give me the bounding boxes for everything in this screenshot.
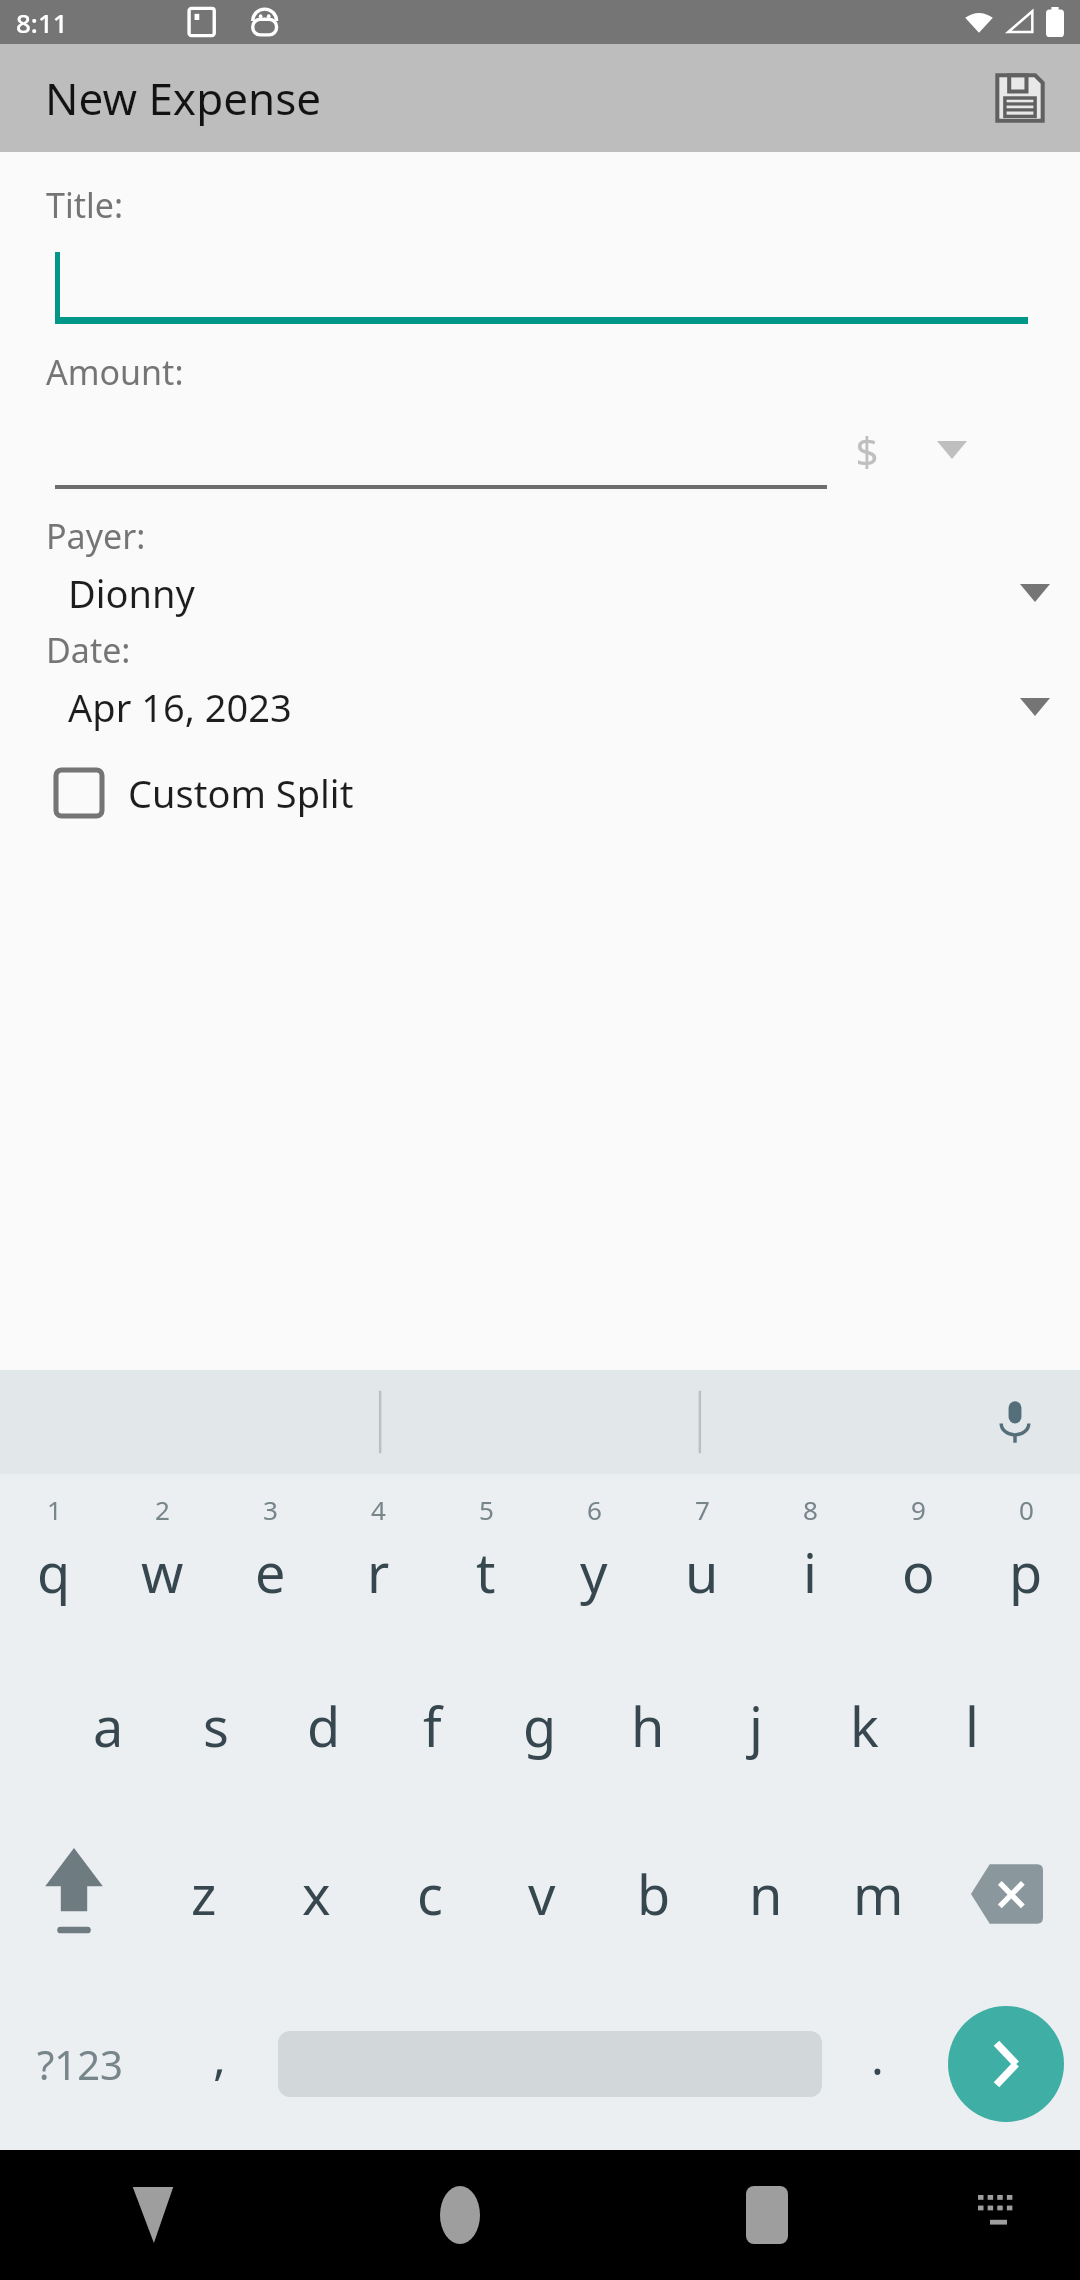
button[interactable]: 7 xyxy=(648,1474,756,1642)
staticText: e xyxy=(255,1535,286,1609)
staticText: Payer: xyxy=(46,513,146,559)
staticText: . xyxy=(871,2024,884,2089)
staticText: w xyxy=(141,1535,184,1609)
staticText: t xyxy=(476,1535,496,1609)
button[interactable]: x xyxy=(260,1810,373,1978)
button[interactable] xyxy=(55,248,1028,324)
staticText: i xyxy=(803,1535,817,1609)
button[interactable]: l xyxy=(918,1642,1026,1810)
staticText: k xyxy=(850,1689,879,1763)
button[interactable]: 9 xyxy=(864,1474,972,1642)
button[interactable]: Voice input xyxy=(978,1385,1052,1459)
staticText: j xyxy=(749,1689,763,1763)
button[interactable]: 5 xyxy=(432,1474,540,1642)
button[interactable] xyxy=(55,411,827,489)
staticText: Custom Split xyxy=(128,767,354,819)
staticText: v xyxy=(528,1857,556,1931)
staticText: a xyxy=(93,1689,124,1763)
button[interactable]: 8 xyxy=(756,1474,864,1642)
button[interactable]: 2 xyxy=(108,1474,216,1642)
button[interactable]: 0 xyxy=(972,1474,1080,1642)
button[interactable]: z xyxy=(147,1810,260,1978)
button[interactable]: n xyxy=(710,1810,822,1978)
staticText: 1 xyxy=(47,1492,62,1527)
staticText: 2 xyxy=(155,1492,170,1527)
button[interactable]: Save xyxy=(978,56,1062,140)
staticText: u xyxy=(685,1535,719,1609)
staticText: c xyxy=(417,1857,443,1931)
button[interactable]: 3 xyxy=(216,1474,324,1642)
button[interactable]: 6 xyxy=(540,1474,648,1642)
staticText: x xyxy=(302,1857,331,1931)
button[interactable]: d xyxy=(270,1642,378,1810)
staticText: r xyxy=(367,1535,390,1609)
button[interactable]: Switch keyboard xyxy=(920,2150,1080,2280)
staticText: b xyxy=(637,1857,671,1931)
staticText: 5 xyxy=(479,1492,494,1527)
button[interactable]: c xyxy=(373,1810,486,1978)
staticText: q xyxy=(37,1535,71,1609)
button[interactable]: a xyxy=(54,1642,162,1810)
staticText: g xyxy=(523,1689,557,1763)
button[interactable]: k xyxy=(810,1642,918,1810)
button[interactable]: 1 xyxy=(0,1474,108,1642)
button[interactable]: $ xyxy=(827,423,907,477)
staticText: , xyxy=(213,2024,226,2089)
button[interactable]: Currency dropdown xyxy=(907,411,997,489)
button[interactable]: s xyxy=(162,1642,270,1810)
staticText: m xyxy=(853,1857,904,1931)
staticText: f xyxy=(423,1689,442,1763)
button[interactable]: v xyxy=(486,1810,598,1978)
staticText: Apr 16, 2023 xyxy=(68,681,292,733)
button[interactable]: h xyxy=(594,1642,702,1810)
staticText: New Expense xyxy=(45,68,322,128)
staticText: 3 xyxy=(263,1492,278,1527)
staticText: o xyxy=(902,1535,935,1609)
staticText: Title: xyxy=(46,182,124,228)
button[interactable]: m xyxy=(822,1810,934,1978)
staticText: l xyxy=(965,1689,979,1763)
staticText: ?123 xyxy=(37,2037,123,2091)
staticText: 0 xyxy=(1019,1492,1034,1527)
button[interactable]: 4 xyxy=(324,1474,432,1642)
button[interactable]: . xyxy=(822,1978,932,2150)
button[interactable]: Shift xyxy=(0,1810,147,1978)
staticText: y xyxy=(580,1535,608,1609)
staticText: 9 xyxy=(911,1492,926,1527)
staticText: d xyxy=(307,1689,341,1763)
button[interactable]: Enter xyxy=(932,1978,1080,2150)
staticText: Amount: xyxy=(46,349,184,395)
button[interactable]: g xyxy=(486,1642,594,1810)
staticText: 8 xyxy=(803,1492,818,1527)
button[interactable]: , xyxy=(160,1978,278,2150)
staticText: Dionny xyxy=(68,567,195,619)
button[interactable]: Custom Split xyxy=(56,753,354,833)
button[interactable]: Dionny xyxy=(0,559,1080,627)
staticText: s xyxy=(203,1689,229,1763)
button[interactable]: Apr 16, 2023 xyxy=(0,673,1080,741)
staticText: p xyxy=(1009,1535,1043,1609)
staticText: 4 xyxy=(371,1492,386,1527)
button[interactable]: j xyxy=(702,1642,810,1810)
button[interactable]: Recents xyxy=(613,2150,920,2280)
button[interactable]: Home xyxy=(306,2150,613,2280)
staticText: h xyxy=(631,1689,665,1763)
staticText: z xyxy=(191,1857,217,1931)
staticText: Date: xyxy=(46,627,131,673)
button[interactable]: Backspace xyxy=(934,1810,1080,1978)
button[interactable]: f xyxy=(378,1642,486,1810)
button[interactable]: ?123 xyxy=(0,1978,160,2150)
staticText: 8:11 xyxy=(16,5,68,40)
button[interactable]: Back xyxy=(0,2150,306,2280)
staticText: 6 xyxy=(587,1492,602,1527)
staticText: 7 xyxy=(695,1492,710,1527)
staticText: n xyxy=(749,1857,783,1931)
button[interactable]: b xyxy=(598,1810,710,1978)
